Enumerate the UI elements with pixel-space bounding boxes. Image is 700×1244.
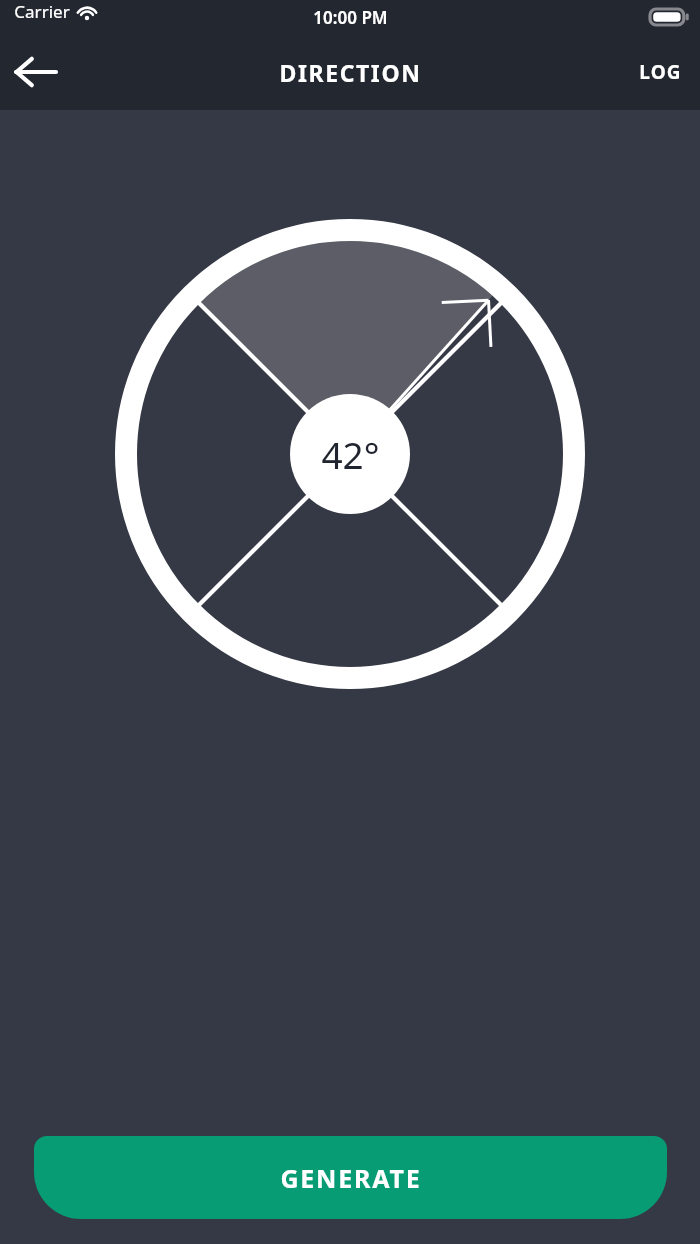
staticText: 42°: [321, 429, 380, 479]
staticText: Carrier: [14, 0, 70, 23]
staticText: GENERATE: [280, 1161, 422, 1195]
staticText: 10:00 PM: [313, 6, 388, 29]
staticText: LOG: [639, 59, 682, 85]
staticText: DIRECTION: [279, 57, 422, 88]
button[interactable]: GENERATE: [34, 1136, 667, 1219]
button[interactable]: LOG: [621, 36, 700, 108]
button[interactable]: Back: [0, 36, 72, 108]
